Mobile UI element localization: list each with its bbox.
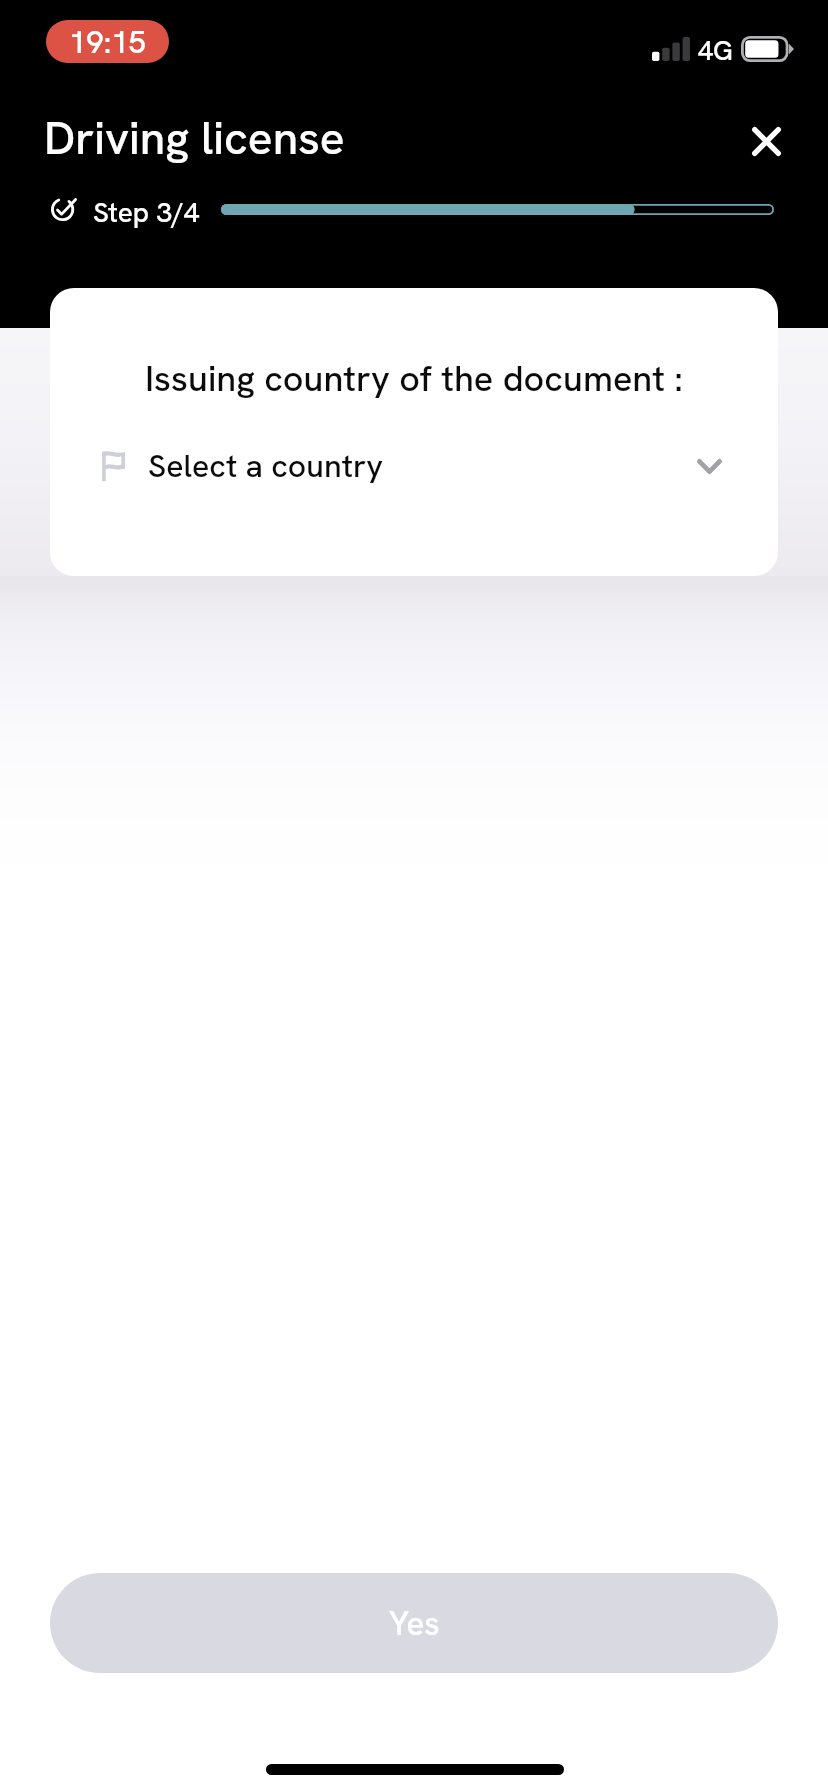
staticText: Select a country: [148, 445, 383, 487]
button[interactable]: Yes: [50, 1573, 778, 1673]
button[interactable]: Select a country: [50, 434, 778, 498]
staticText: Yes: [389, 1602, 440, 1645]
staticText: Driving license: [44, 108, 345, 168]
staticText: Issuing country of the document :: [145, 355, 683, 402]
button[interactable]: Close: [730, 104, 802, 172]
staticText: 4G: [698, 33, 733, 61]
staticText: Step 3/4: [93, 194, 200, 228]
staticText: 19:15: [69, 22, 146, 62]
